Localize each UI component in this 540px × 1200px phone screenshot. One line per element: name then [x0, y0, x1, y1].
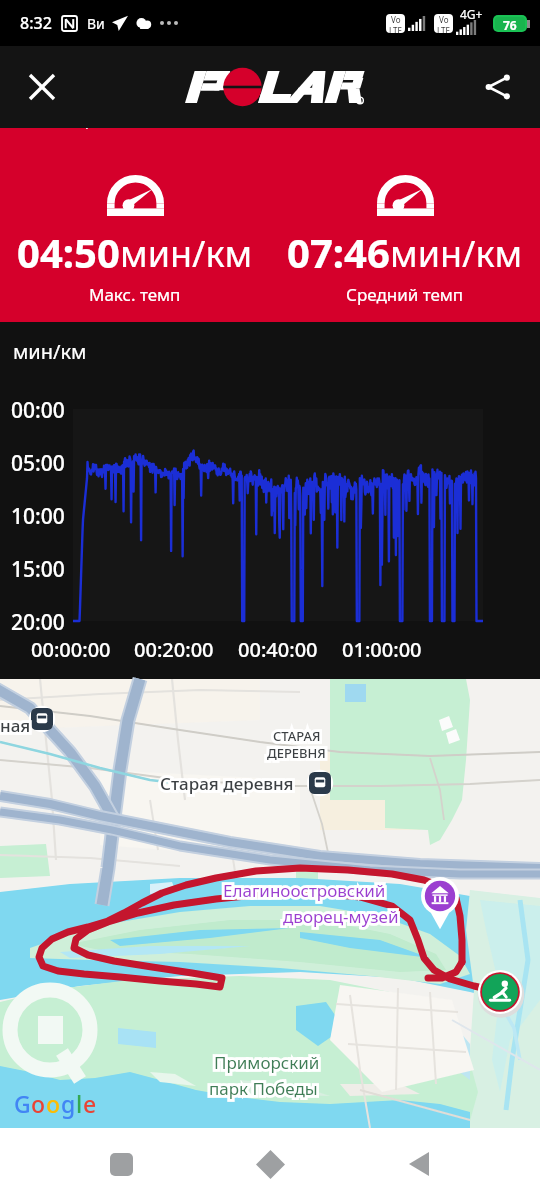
staticText: мин/км — [390, 229, 523, 278]
staticText: 07:46 — [287, 225, 390, 279]
staticText: LTE — [389, 25, 402, 33]
staticText: o — [46, 1088, 61, 1119]
staticText: СТАРАЯ — [273, 727, 321, 745]
staticText: 4G+ — [460, 6, 483, 22]
staticText: 00:40:00 — [238, 636, 318, 663]
staticText: 00:00:00 — [31, 636, 111, 663]
staticText: ДЕРЕВНЯ — [267, 744, 326, 762]
staticText: Старая деревня — [160, 772, 294, 795]
staticText: Макс. темп — [89, 283, 181, 306]
staticText: мин/км — [13, 338, 87, 365]
staticText: ДЕРЕВНЯ — [267, 744, 326, 762]
staticText: 15:00 — [11, 555, 65, 584]
button[interactable]: 07:46 — [270, 175, 540, 306]
staticText: LTE — [437, 25, 450, 33]
staticText: 76 — [503, 17, 517, 30]
staticText: 01:00:00 — [342, 636, 422, 663]
button[interactable]: 04:50 — [0, 175, 270, 306]
button[interactable]: Close — [14, 59, 70, 115]
staticText: 04:50 — [17, 225, 120, 279]
staticText: Елагиноостровский — [223, 879, 386, 902]
button[interactable]: Back — [391, 1136, 447, 1192]
staticText: 00:00 — [11, 396, 65, 425]
staticText: o — [31, 1088, 46, 1119]
staticText: G — [14, 1088, 31, 1119]
staticText: дворец-музей — [283, 905, 399, 928]
staticText: g — [61, 1088, 76, 1119]
button[interactable]: Share — [470, 59, 526, 115]
staticText: Приморский — [214, 1051, 320, 1074]
staticText: ная — [0, 714, 31, 737]
staticText: дворец-музей — [283, 905, 399, 928]
staticText: Ви — [87, 14, 105, 33]
button[interactable]: Home — [242, 1136, 298, 1192]
staticText: l — [76, 1088, 83, 1119]
staticText: 10:00 — [11, 502, 65, 531]
staticText: 05:00 — [11, 449, 65, 478]
staticText: мин/км — [120, 229, 253, 278]
staticText: парк Победы — [209, 1077, 318, 1100]
button[interactable]: Recent apps — [93, 1136, 149, 1192]
staticText: 20:00 — [11, 608, 65, 637]
staticText: e — [83, 1088, 97, 1119]
staticText: 00:20:00 — [134, 636, 214, 663]
staticText: 8:32 — [20, 12, 52, 34]
button[interactable]: Елагиноостровский — [0, 679, 540, 1128]
staticText: Vo — [391, 14, 401, 25]
staticText: Средний темп — [346, 283, 464, 306]
staticText: Приморский — [214, 1051, 320, 1074]
staticText: Старая деревня — [160, 772, 294, 795]
staticText: ная — [0, 714, 31, 737]
staticText: Елагиноостровский — [223, 879, 386, 902]
staticText: СТАРАЯ — [273, 727, 321, 745]
staticText: парк Победы — [209, 1077, 318, 1100]
staticText: Vo — [439, 14, 449, 25]
staticText: Продолжительность — [73, 128, 233, 130]
